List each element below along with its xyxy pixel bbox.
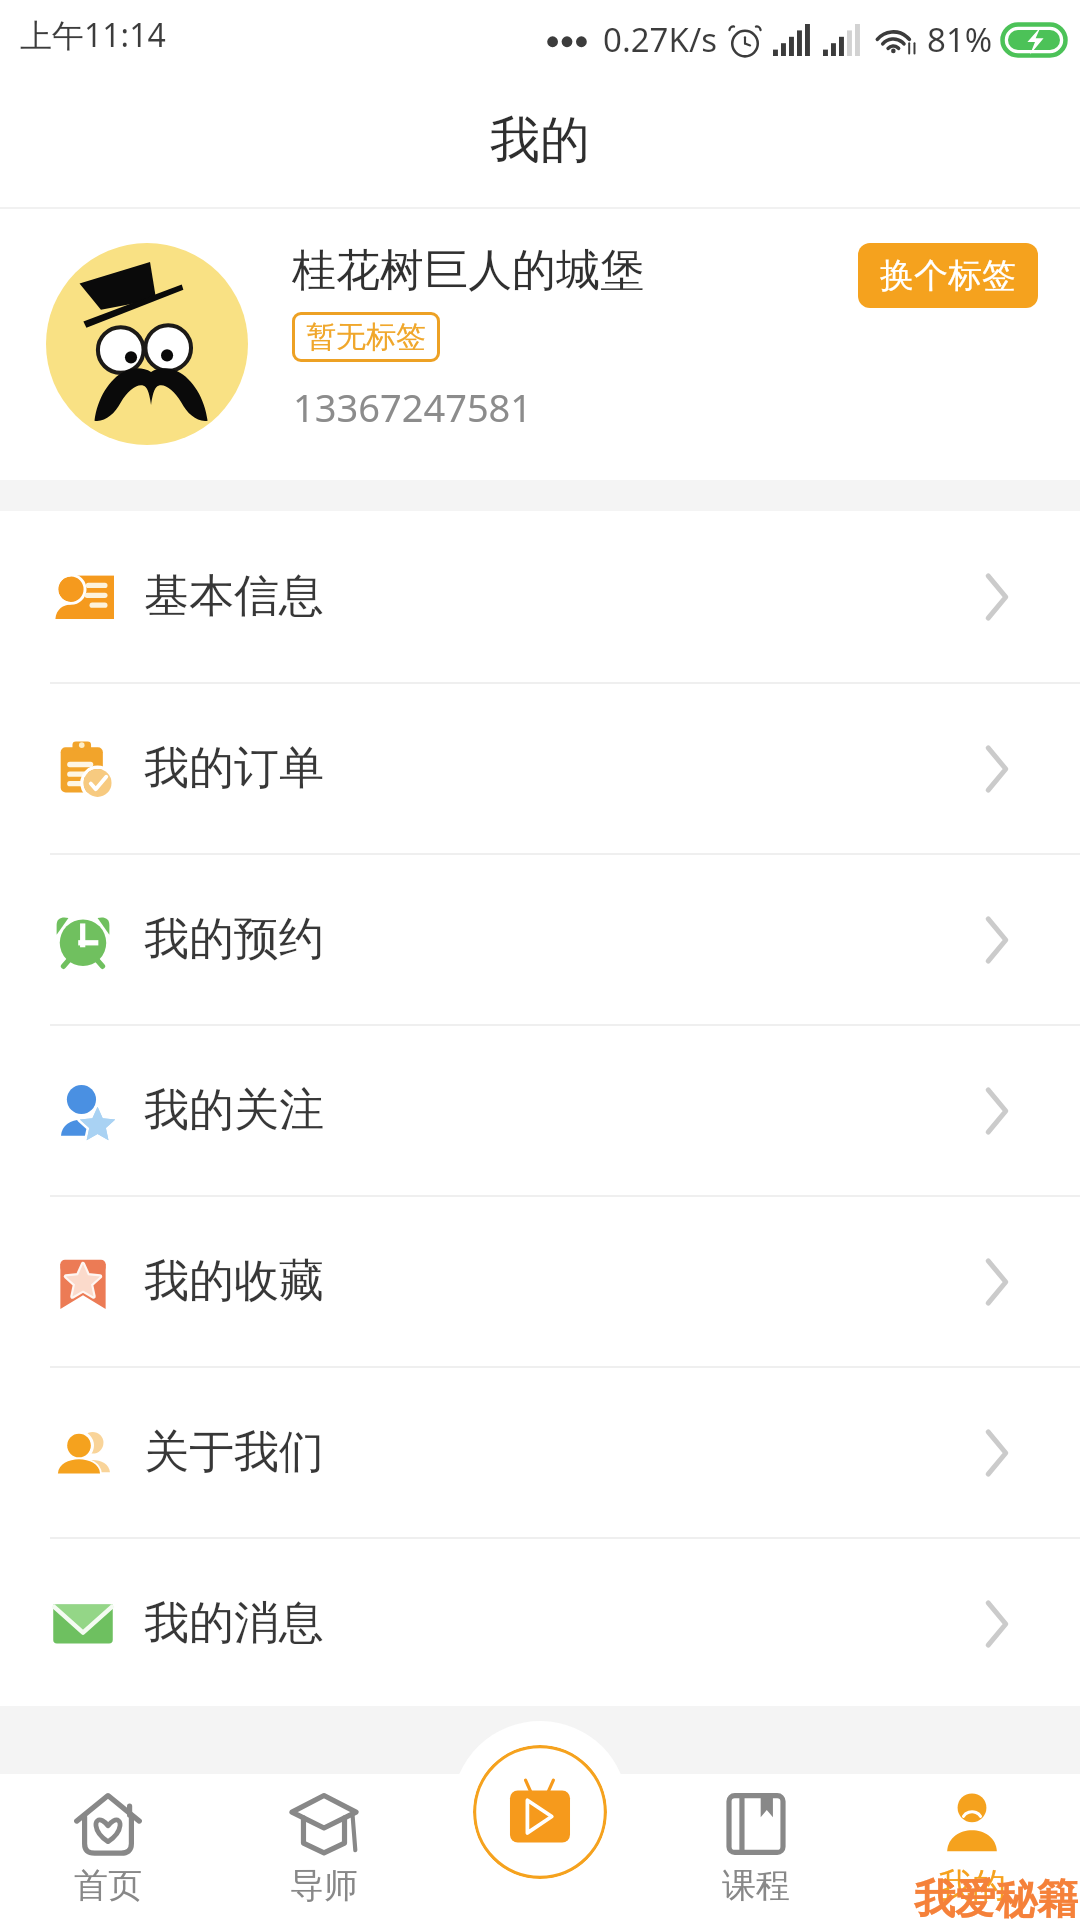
button[interactable]: 首页 bbox=[0, 1774, 216, 1920]
button[interactable]: 换个标签 bbox=[858, 243, 1038, 308]
staticText: 0.27K/s bbox=[603, 17, 717, 62]
staticText: 关于我们 bbox=[144, 1424, 324, 1481]
button[interactable]: 我的关注 bbox=[0, 1026, 1080, 1195]
button[interactable]: 桂花树巨人的城堡 bbox=[0, 209, 1080, 480]
staticText: 首页 bbox=[74, 1864, 142, 1907]
button[interactable]: 我的 bbox=[864, 1774, 1080, 1920]
button[interactable]: 我的预约 bbox=[0, 855, 1080, 1024]
button[interactable]: 关于我们 bbox=[0, 1368, 1080, 1537]
staticText: 我的关注 bbox=[144, 1082, 324, 1139]
staticText: 暂无标签 bbox=[306, 318, 426, 356]
button[interactable]: 课程 bbox=[648, 1774, 864, 1920]
button[interactable]: 导师 bbox=[216, 1774, 432, 1920]
button[interactable]: 基本信息 bbox=[0, 511, 1080, 682]
staticText: 13367247581 bbox=[293, 381, 533, 433]
button[interactable]: 我的收藏 bbox=[0, 1197, 1080, 1366]
staticText: 我的 bbox=[490, 109, 590, 172]
button[interactable]: 我的订单 bbox=[0, 684, 1080, 853]
staticText: 上午11:14 bbox=[20, 13, 166, 57]
staticText: 导师 bbox=[290, 1864, 358, 1907]
staticText: 我的 bbox=[938, 1864, 1006, 1907]
staticText: 81% bbox=[927, 17, 993, 62]
staticText: 基本信息 bbox=[144, 568, 324, 625]
staticText: 我的预约 bbox=[144, 911, 324, 968]
staticText: 我爱秘籍 bbox=[914, 1874, 1078, 1920]
staticText: 换个标签 bbox=[880, 254, 1016, 297]
staticText: 桂花树巨人的城堡 bbox=[292, 243, 644, 298]
staticText: 我的收藏 bbox=[144, 1253, 324, 1310]
staticText: 我的消息 bbox=[144, 1595, 324, 1652]
button[interactable]: 我的消息 bbox=[0, 1539, 1080, 1708]
staticText: 课程 bbox=[722, 1864, 790, 1907]
staticText: 我的订单 bbox=[144, 740, 324, 797]
button[interactable]: 直播 bbox=[473, 1745, 607, 1879]
